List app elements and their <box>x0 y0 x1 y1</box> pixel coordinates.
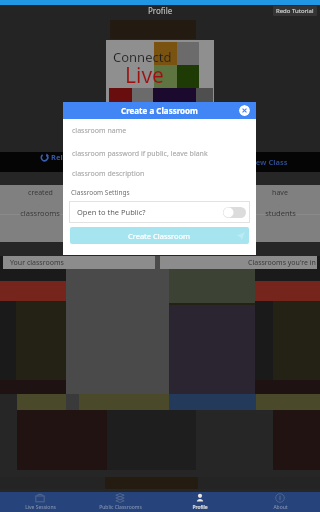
staticText: classroom name <box>72 126 127 136</box>
staticText: Classroom Settings <box>71 188 130 197</box>
button[interactable]: Classrooms you're in <box>160 256 317 269</box>
button[interactable]: Create Classroom <box>70 227 249 244</box>
button[interactable]: About <box>240 492 320 512</box>
staticText: Reload <box>51 152 77 162</box>
staticText: About <box>273 504 288 511</box>
button[interactable]: Public Classrooms <box>80 492 160 512</box>
staticText: Connectd <box>113 48 172 66</box>
staticText: Public Classrooms <box>99 504 142 511</box>
button[interactable]: Live Sessions <box>0 492 80 512</box>
staticText: Open to the Public? <box>77 207 146 217</box>
button[interactable]: Hire New Class <box>232 157 288 167</box>
staticText: classrooms <box>20 208 60 218</box>
staticText: Create a Classroom <box>121 105 198 116</box>
button[interactable]: have <box>240 185 320 242</box>
button[interactable]: classroom password if public, leave blan… <box>63 143 256 164</box>
button[interactable]: Redo Tutorial <box>273 6 317 16</box>
staticText: created <box>28 188 53 198</box>
button[interactable]: Profile <box>160 492 240 512</box>
staticText: Your classrooms <box>10 258 64 268</box>
staticText: students <box>265 208 296 218</box>
staticText: Redo Tutorial <box>276 7 314 15</box>
button[interactable]: Reload <box>40 152 77 162</box>
button[interactable]: Your classrooms <box>3 256 155 269</box>
button[interactable]: Close <box>239 105 250 116</box>
staticText: Live <box>125 61 164 90</box>
staticText: have <box>272 188 288 198</box>
staticText: Create Classroom <box>128 231 191 241</box>
staticText: Hire New Class <box>232 157 288 167</box>
button[interactable]: Open to the Public? <box>69 201 250 223</box>
staticText: Classrooms you're in <box>248 258 316 268</box>
button[interactable]: classroom name <box>63 119 256 143</box>
staticText: Profile <box>148 5 173 16</box>
button[interactable]: created <box>0 185 80 242</box>
staticText: Profile <box>192 504 208 511</box>
button[interactable]: classroom description <box>63 164 256 183</box>
staticText: classroom password if public, leave blan… <box>72 149 208 159</box>
staticText: classroom description <box>72 169 145 179</box>
staticText: Live Sessions <box>25 504 56 511</box>
